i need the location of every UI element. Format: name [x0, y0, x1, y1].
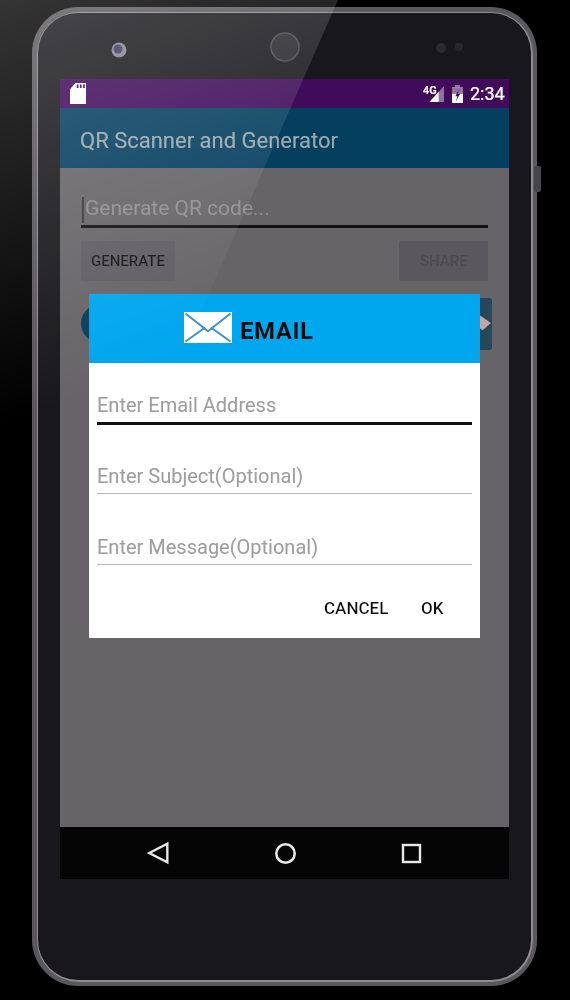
button[interactable]: GENERATE: [81, 241, 175, 281]
staticText: Enter Email Address: [97, 393, 277, 416]
button[interactable]: CANCEL: [319, 589, 394, 627]
staticText: CANCEL: [324, 598, 389, 618]
staticText: Enter Subject(Optional): [97, 464, 304, 487]
button[interactable]: Back: [130, 827, 186, 879]
staticText: Generate QR code...: [85, 196, 270, 221]
staticText: SHARE: [420, 252, 468, 270]
button[interactable]: Email: [81, 304, 120, 343]
staticText: OK: [421, 598, 444, 618]
staticText: 4G: [423, 84, 437, 97]
button[interactable]: OK: [413, 589, 451, 627]
staticText: Enter Message(Optional): [97, 535, 319, 558]
button[interactable]: Recents: [383, 827, 439, 879]
button[interactable]: Scan: [440, 298, 492, 350]
staticText: GENERATE: [91, 252, 165, 270]
staticText: 2:34: [470, 83, 505, 104]
button[interactable]: Home: [257, 827, 313, 879]
button[interactable]: SHARE: [399, 241, 488, 281]
staticText: QR Scanner and Generator: [80, 128, 338, 154]
staticText: EMAIL: [240, 317, 314, 345]
